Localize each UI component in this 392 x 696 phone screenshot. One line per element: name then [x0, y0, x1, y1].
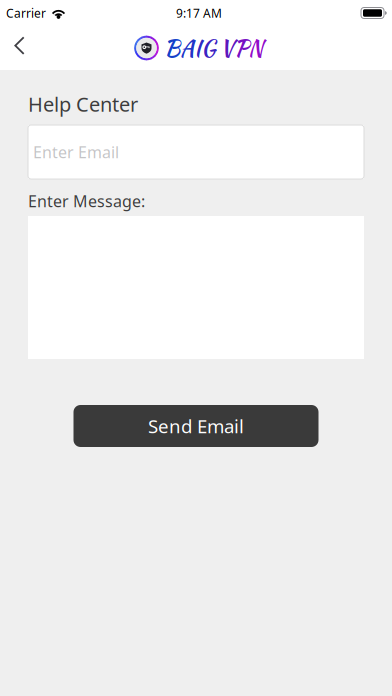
- staticText: V: [220, 32, 234, 64]
- staticText: N: [248, 32, 263, 64]
- staticText: Help Center: [28, 91, 138, 117]
- staticText: [215, 32, 220, 64]
- staticText: 9:17 AM: [176, 5, 222, 21]
- staticText: I: [194, 32, 201, 64]
- staticText: B: [164, 32, 180, 64]
- staticText: P: [234, 32, 248, 64]
- staticText: Enter Message:: [28, 190, 145, 212]
- staticText: Carrier: [6, 5, 46, 21]
- staticText: Enter Email: [33, 141, 119, 163]
- staticText: A: [180, 32, 194, 64]
- button[interactable]: Send Email: [73, 405, 318, 447]
- button[interactable]: Back: [0, 26, 39, 70]
- staticText: Send Email: [148, 414, 244, 438]
- staticText: G: [201, 32, 215, 64]
